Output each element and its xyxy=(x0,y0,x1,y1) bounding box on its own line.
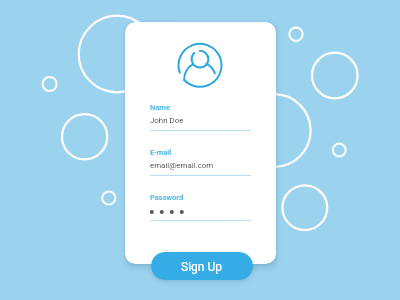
staticText: Sign Up xyxy=(181,260,222,274)
button[interactable]: E-mail xyxy=(150,148,251,176)
button[interactable]: Password xyxy=(150,193,251,221)
staticText: Password xyxy=(150,193,184,202)
staticText: E-mail xyxy=(150,148,172,157)
button[interactable]: Sign Up xyxy=(151,252,253,280)
staticText: Name xyxy=(150,103,170,112)
staticText: email@email.com xyxy=(150,161,214,170)
other: Profile picture xyxy=(175,37,275,117)
button[interactable]: Name xyxy=(150,103,251,131)
staticText: John Doe xyxy=(150,116,184,125)
